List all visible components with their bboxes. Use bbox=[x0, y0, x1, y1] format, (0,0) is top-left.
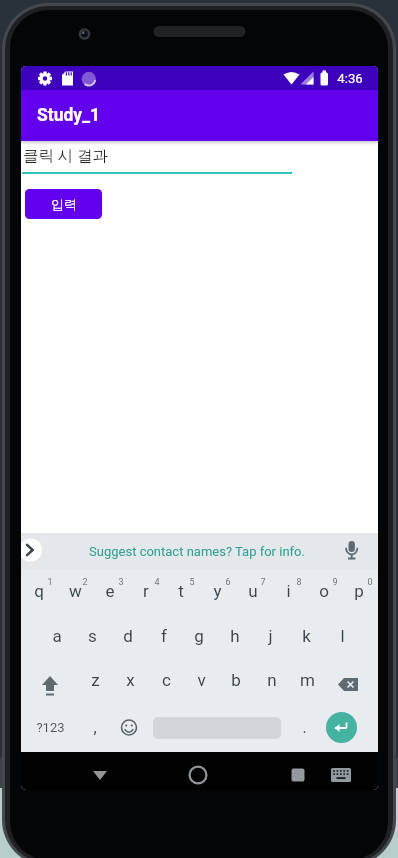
staticText: n bbox=[267, 670, 277, 690]
button[interactable]: y bbox=[199, 569, 235, 613]
button[interactable]: ?123 bbox=[30, 707, 70, 747]
button[interactable]: x bbox=[112, 658, 148, 702]
staticText: 3 bbox=[118, 577, 124, 588]
staticText: y bbox=[213, 581, 222, 601]
button[interactable]: o bbox=[306, 569, 342, 613]
button[interactable] bbox=[282, 759, 314, 790]
button[interactable]: f bbox=[146, 614, 182, 658]
button[interactable]: d bbox=[110, 614, 146, 658]
button[interactable] bbox=[326, 712, 357, 743]
staticText: Study_1 bbox=[37, 105, 100, 126]
staticText: u bbox=[248, 581, 258, 601]
staticText: e bbox=[105, 581, 115, 601]
button[interactable]: p bbox=[341, 569, 377, 613]
button[interactable]: u bbox=[235, 569, 271, 613]
staticText: 4:36 bbox=[337, 71, 363, 86]
staticText: v bbox=[197, 670, 206, 690]
button[interactable] bbox=[327, 662, 371, 702]
staticText: i bbox=[286, 581, 291, 601]
button[interactable] bbox=[115, 707, 143, 747]
staticText: j bbox=[268, 626, 273, 646]
button[interactable]: , bbox=[81, 707, 109, 747]
staticText: h bbox=[230, 626, 240, 646]
button[interactable]: s bbox=[74, 614, 110, 658]
button[interactable]: q bbox=[21, 569, 57, 613]
staticText: s bbox=[88, 626, 97, 646]
staticText: g bbox=[194, 626, 204, 646]
staticText: c bbox=[162, 670, 171, 690]
staticText: x bbox=[126, 670, 135, 690]
button[interactable]: m bbox=[289, 658, 325, 702]
button[interactable]: b bbox=[218, 658, 254, 702]
staticText: o bbox=[319, 581, 329, 601]
staticText: 2 bbox=[82, 577, 88, 588]
staticText: 7 bbox=[260, 577, 266, 588]
button[interactable]: t bbox=[163, 569, 199, 613]
button[interactable]: z bbox=[77, 658, 113, 702]
staticText: . bbox=[302, 718, 307, 737]
staticText: b bbox=[231, 670, 241, 690]
button[interactable]: 클릭 시 결과 bbox=[21, 139, 311, 172]
staticText: w bbox=[69, 581, 82, 601]
staticText: f bbox=[161, 626, 167, 646]
staticText: ?123 bbox=[36, 720, 65, 735]
staticText: k bbox=[302, 626, 311, 646]
button[interactable]: e bbox=[92, 569, 128, 613]
staticText: 8 bbox=[296, 577, 302, 588]
staticText: 4 bbox=[154, 577, 160, 588]
button[interactable]: k bbox=[288, 614, 324, 658]
staticText: 5 bbox=[189, 577, 195, 588]
staticText: z bbox=[91, 670, 100, 690]
button[interactable]: i bbox=[270, 569, 306, 613]
staticText: Suggest contact names? Tap for info. bbox=[89, 544, 305, 559]
button[interactable]: g bbox=[181, 614, 217, 658]
staticText: m bbox=[300, 670, 315, 690]
staticText: 1 bbox=[47, 577, 53, 588]
button[interactable] bbox=[84, 759, 116, 790]
button[interactable]: h bbox=[217, 614, 253, 658]
button[interactable]: r bbox=[128, 569, 164, 613]
staticText: 클릭 시 결과 bbox=[23, 146, 109, 166]
button[interactable]: n bbox=[254, 658, 290, 702]
staticText: r bbox=[143, 581, 149, 601]
button[interactable] bbox=[182, 759, 214, 790]
staticText: p bbox=[354, 581, 364, 601]
staticText: 입력 bbox=[51, 196, 77, 212]
button[interactable]: 입력 bbox=[25, 189, 102, 219]
button[interactable]: c bbox=[148, 658, 184, 702]
staticText: l bbox=[340, 626, 345, 646]
staticText: a bbox=[52, 626, 62, 646]
staticText: t bbox=[178, 581, 184, 601]
staticText: 6 bbox=[225, 577, 231, 588]
staticText: 0 bbox=[367, 577, 373, 588]
button[interactable] bbox=[325, 759, 357, 790]
staticText: 9 bbox=[332, 577, 338, 588]
staticText: q bbox=[34, 581, 44, 601]
button[interactable]: . bbox=[290, 707, 318, 747]
button[interactable]: j bbox=[252, 614, 288, 658]
button[interactable] bbox=[28, 662, 72, 702]
button[interactable]: w bbox=[57, 569, 93, 613]
button[interactable]: Suggest contact names? Tap for info. bbox=[61, 533, 332, 570]
staticText: , bbox=[93, 718, 97, 737]
button[interactable]: v bbox=[183, 658, 219, 702]
button[interactable]: l bbox=[324, 614, 360, 658]
button[interactable]: a bbox=[39, 614, 75, 658]
staticText: d bbox=[123, 626, 133, 646]
